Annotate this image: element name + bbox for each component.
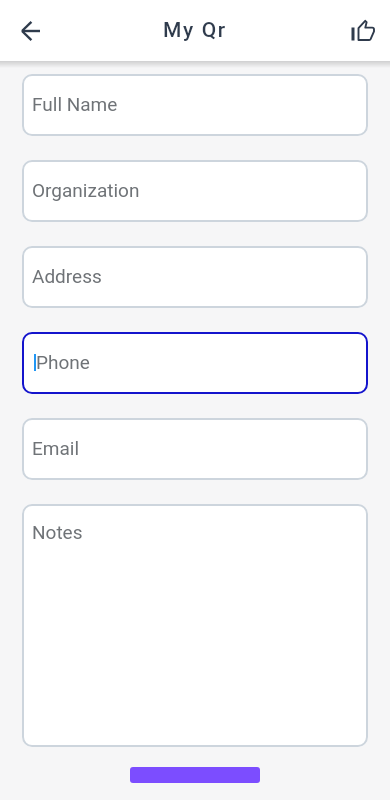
- staticText: Full Name: [32, 93, 118, 115]
- staticText: Email: [32, 437, 80, 459]
- button[interactable]: Organization: [22, 160, 368, 222]
- button[interactable]: Notes: [22, 504, 368, 747]
- button[interactable]: [346, 14, 380, 48]
- button[interactable]: Full Name: [22, 74, 368, 136]
- button[interactable]: Phone: [22, 332, 368, 394]
- button[interactable]: Address: [22, 246, 368, 308]
- button[interactable]: [130, 767, 260, 783]
- staticText: Notes: [32, 521, 83, 543]
- button[interactable]: Email: [22, 418, 368, 480]
- button[interactable]: [14, 14, 48, 48]
- staticText: Organization: [32, 179, 140, 201]
- staticText: Phone: [36, 351, 90, 373]
- staticText: My Qr: [163, 18, 227, 43]
- staticText: Address: [32, 265, 102, 287]
